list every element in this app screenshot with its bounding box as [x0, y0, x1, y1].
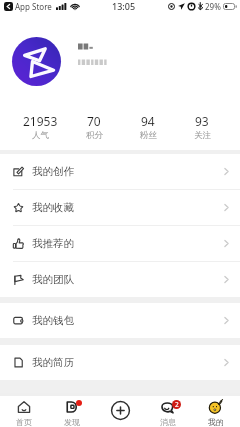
- staticText: 21953: [23, 113, 58, 129]
- staticText: 我推荐的: [32, 237, 74, 250]
- staticText: 消息: [160, 417, 176, 427]
- button[interactable]: 94: [121, 105, 175, 143]
- staticText: 粉丝: [140, 130, 157, 141]
- staticText: 发现: [64, 417, 80, 427]
- staticText: 94: [141, 113, 155, 129]
- button[interactable]: 我的收藏: [0, 190, 240, 225]
- button[interactable]: 我的: [192, 396, 240, 427]
- staticText: App Store: [15, 1, 52, 12]
- staticText: 关注: [194, 130, 211, 141]
- button[interactable]: 70: [67, 105, 121, 143]
- button[interactable]: [0, 18, 240, 105]
- button[interactable]: 我的团队: [0, 262, 240, 297]
- staticText: 我的钱包: [32, 314, 74, 327]
- staticText: 人气: [32, 130, 49, 141]
- button[interactable]: 93: [175, 105, 229, 143]
- button[interactable]: 首页: [0, 396, 48, 427]
- button[interactable]: 21953: [14, 105, 67, 143]
- staticText: 我的收藏: [32, 201, 74, 214]
- staticText: 积分: [86, 130, 103, 141]
- button[interactable]: 我推荐的: [0, 226, 240, 261]
- staticText: 13:05: [112, 0, 136, 12]
- button[interactable]: 2: [144, 396, 192, 427]
- button[interactable]: 发现: [48, 396, 96, 427]
- button[interactable]: 我的创作: [0, 154, 240, 189]
- staticText: 我的团队: [32, 273, 74, 286]
- staticText: 29%: [205, 1, 221, 12]
- staticText: 我的创作: [32, 165, 74, 178]
- staticText: 70: [87, 113, 101, 129]
- button[interactable]: Add: [96, 396, 144, 427]
- staticText: 我的简历: [32, 356, 74, 369]
- button[interactable]: 我的钱包: [0, 303, 240, 338]
- button[interactable]: 我的简历: [0, 345, 240, 380]
- staticText: 93: [195, 113, 209, 129]
- staticText: 2: [175, 400, 179, 409]
- staticText: 我的: [208, 417, 224, 427]
- staticText: 首页: [16, 417, 32, 427]
